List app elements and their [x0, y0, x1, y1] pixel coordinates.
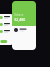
staticText: Balance — [14, 13, 24, 17]
staticText: $2,480 — [14, 17, 25, 22]
